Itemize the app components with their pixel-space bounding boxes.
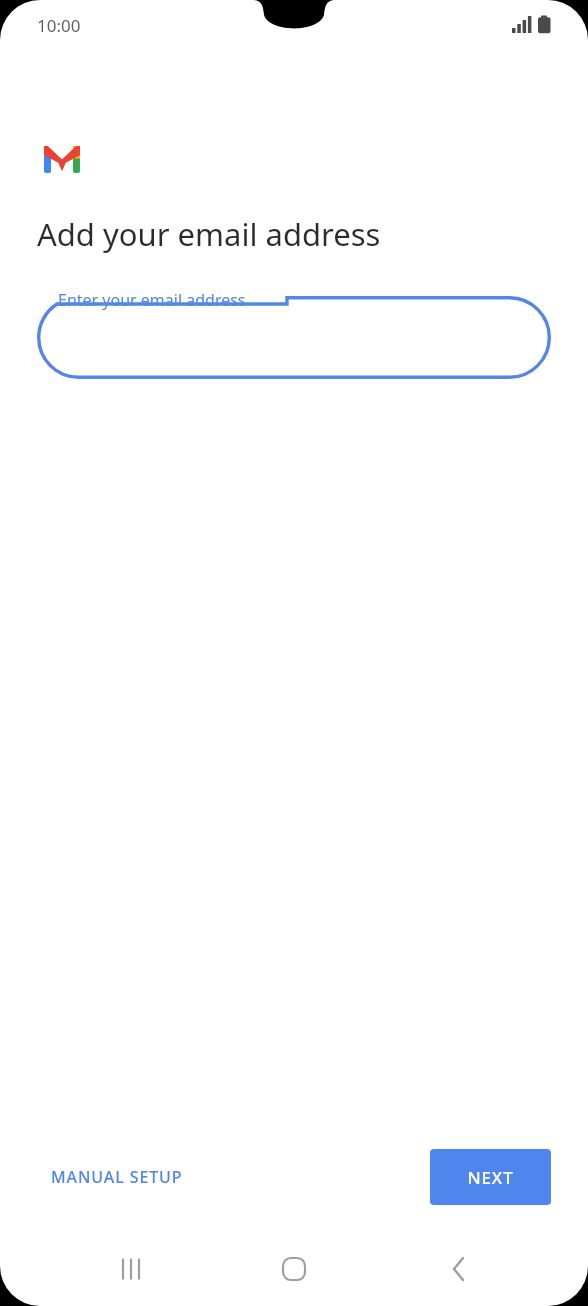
staticText: MANUAL SETUP bbox=[51, 1166, 183, 1188]
button[interactable]: Home bbox=[254, 1238, 334, 1300]
button[interactable]: Recent apps bbox=[93, 1238, 173, 1300]
button[interactable]: MANUAL SETUP bbox=[25, 1152, 208, 1202]
staticText: Add your email address bbox=[37, 213, 381, 255]
button[interactable] bbox=[37, 296, 551, 379]
button[interactable]: NEXT bbox=[430, 1149, 551, 1205]
staticText: 10:00 bbox=[37, 14, 81, 37]
staticText: NEXT bbox=[467, 1166, 514, 1189]
button[interactable]: Back bbox=[420, 1238, 500, 1300]
staticText: Enter your email address bbox=[58, 289, 246, 311]
